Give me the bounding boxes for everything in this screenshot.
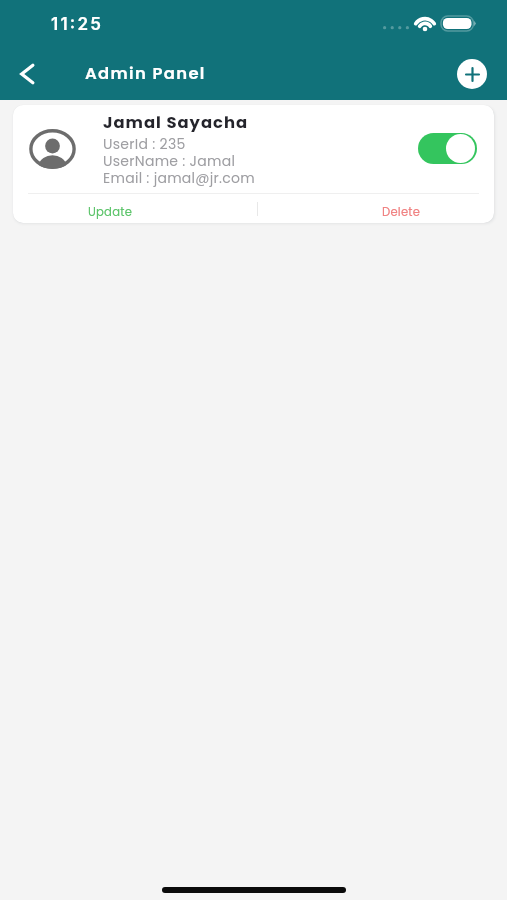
button[interactable]: Delete: [258, 194, 479, 223]
button[interactable]: Back: [5, 52, 49, 96]
button[interactable]: Toggle user status: [418, 133, 477, 164]
staticText: Email : jamal@jr.com: [103, 168, 255, 188]
staticText: UserName : Jamal: [103, 151, 236, 171]
staticText: Update: [88, 204, 133, 220]
button[interactable]: Update: [28, 194, 256, 223]
staticText: Jamal Sayacha: [103, 111, 249, 134]
staticText: 11:25: [51, 14, 104, 35]
staticText: UserId : 235: [103, 134, 186, 154]
staticText: Delete: [382, 204, 421, 220]
button[interactable]: Add: [457, 59, 487, 89]
staticText: Admin Panel: [85, 62, 206, 85]
